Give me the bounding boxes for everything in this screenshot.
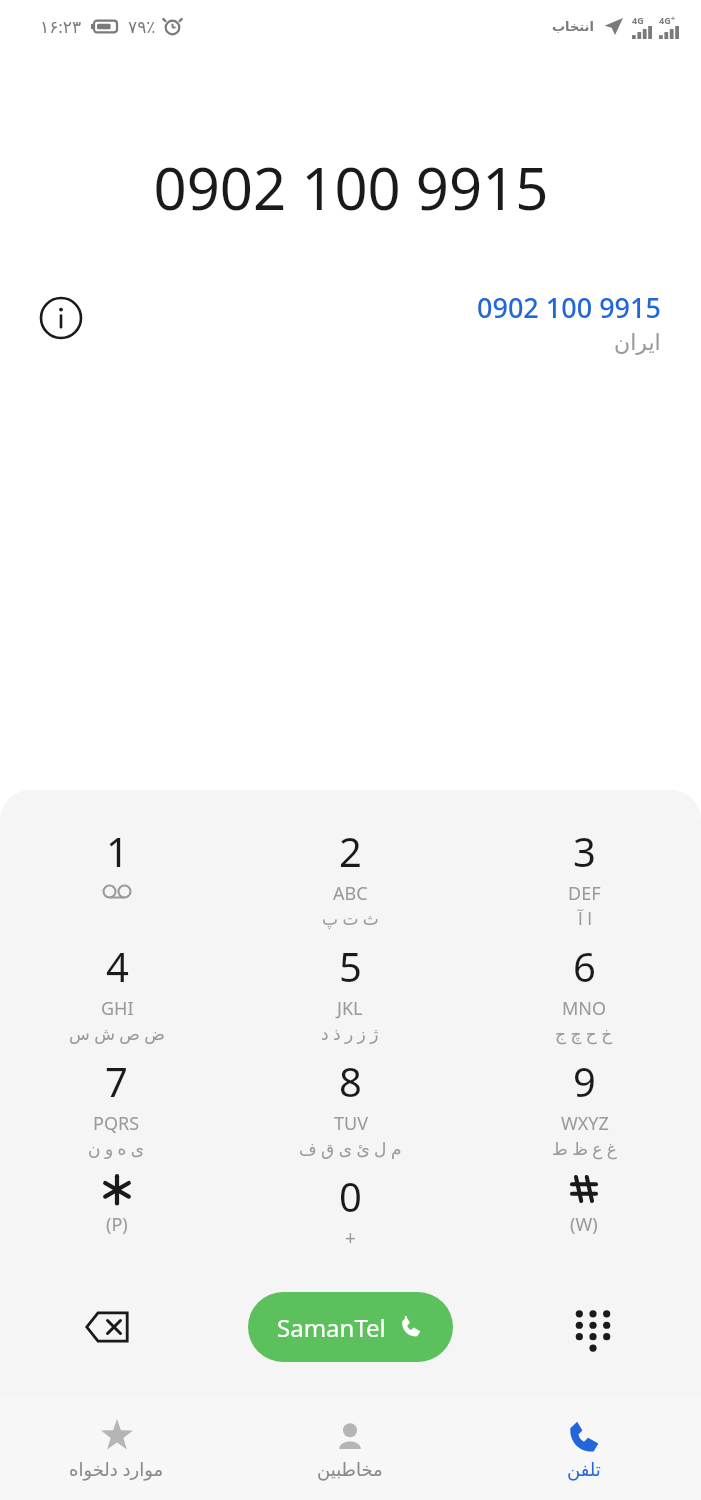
staticText: انتخاب (552, 19, 594, 34)
button[interactable]: (P) (0, 1161, 233, 1276)
button[interactable]: 1 (0, 816, 233, 931)
button[interactable]: 0 (233, 1161, 467, 1276)
staticText: 2 (339, 824, 362, 878)
button[interactable]: 4 (0, 931, 233, 1046)
staticText: 1 (106, 824, 129, 878)
staticText: ا آ (578, 907, 592, 930)
button[interactable]: Backspace (77, 1296, 139, 1358)
staticText: ی ه و ن (88, 1137, 145, 1160)
staticText: مخاطبین (317, 1459, 383, 1480)
staticText: 5 (339, 939, 362, 993)
button[interactable]: 6 (467, 931, 701, 1046)
staticText: 0902 100 9915 (477, 289, 661, 326)
staticText: 4 (106, 939, 129, 993)
staticText: ایران (614, 330, 661, 356)
button[interactable]: 9 (467, 1046, 701, 1161)
staticText: 0 (339, 1169, 362, 1223)
staticText: 0902 100 9915 (153, 148, 549, 227)
button[interactable]: Hide keypad (562, 1296, 624, 1358)
button[interactable]: (W) (467, 1161, 701, 1276)
staticText: غ ع ظ ط (552, 1137, 617, 1160)
button[interactable]: SamanTel (248, 1292, 453, 1362)
staticText: موارد دلخواه (69, 1457, 164, 1482)
button[interactable]: 7 (0, 1046, 233, 1161)
staticText: 6 (573, 939, 596, 993)
staticText: 4G (632, 14, 644, 26)
staticText: م ل ئ ی ق ف (299, 1137, 402, 1160)
button[interactable]: Information (38, 295, 84, 341)
staticText: + (671, 14, 676, 24)
staticText: (W) (570, 1212, 598, 1237)
button[interactable]: 3 (467, 816, 701, 931)
staticText: SamanTel (277, 1311, 386, 1344)
staticText: 8 (339, 1054, 362, 1108)
staticText: ض ص ش س (69, 1022, 165, 1045)
staticText: PQRS (93, 1111, 140, 1136)
button[interactable]: 8 (233, 1046, 467, 1161)
staticText: + (345, 1225, 356, 1251)
staticText: WXYZ (561, 1111, 609, 1136)
staticText: 3 (573, 824, 596, 878)
staticText: MNO (562, 996, 607, 1021)
button[interactable]: مخاطبین (233, 1396, 467, 1500)
button[interactable]: 5 (233, 931, 467, 1046)
staticText: (P) (106, 1212, 128, 1237)
staticText: JKL (337, 996, 363, 1021)
staticText: خ ح چ ج (555, 1022, 613, 1045)
staticText: ث ت پ (322, 907, 379, 930)
staticText: ژ ز ر ذ د (321, 1022, 379, 1045)
button[interactable]: 2 (233, 816, 467, 931)
staticText: تلفن (567, 1459, 601, 1480)
staticText: 9 (573, 1054, 596, 1108)
staticText: ۷۹٪ (128, 17, 156, 37)
button[interactable]: موارد دلخواه (0, 1396, 233, 1500)
button[interactable]: تلفن (467, 1396, 701, 1500)
staticText: ۱۶:۲۳ (40, 15, 82, 38)
staticText: GHI (101, 996, 134, 1021)
staticText: ABC (333, 881, 368, 906)
button[interactable]: 0902 100 9915 (477, 289, 661, 356)
staticText: 4G (659, 14, 671, 26)
staticText: TUV (334, 1111, 368, 1136)
staticText: DEF (568, 881, 601, 906)
staticText: 7 (105, 1054, 128, 1108)
